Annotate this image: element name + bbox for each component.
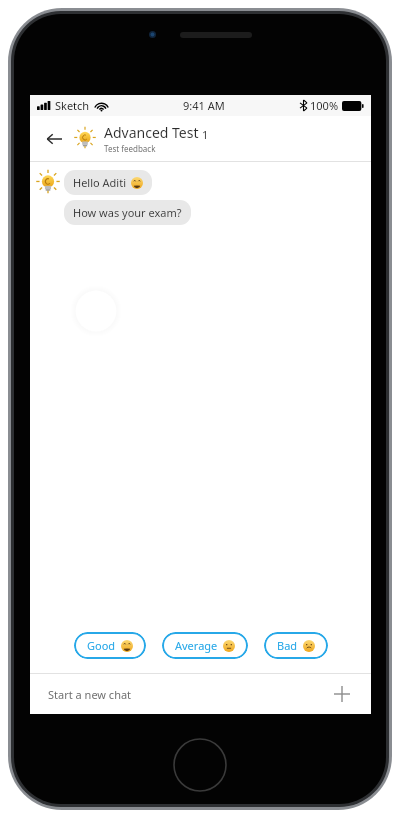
staticText: Bad [277, 638, 298, 653]
staticText: 100% [310, 98, 339, 113]
staticText: Sketch [55, 98, 90, 113]
staticText: Hello Aditi [73, 175, 126, 190]
button[interactable]: How was your exam? [64, 200, 191, 225]
button[interactable]: Add attachment [329, 681, 355, 707]
button[interactable]: Hello Aditi [64, 170, 152, 195]
staticText: Advanced Test [104, 123, 199, 142]
staticText: Good [87, 638, 116, 653]
button[interactable]: Good [74, 632, 146, 659]
staticText: How was your exam? [73, 205, 182, 220]
staticText: Average [175, 638, 218, 653]
staticText: 9:41 AM [183, 98, 225, 113]
staticText: 1 [202, 127, 209, 142]
button[interactable]: Bad [264, 632, 328, 659]
button[interactable]: Back [38, 123, 70, 155]
staticText: Start a new chat [48, 687, 132, 702]
staticText: Test feedback [104, 143, 156, 154]
button[interactable]: Average [162, 632, 248, 659]
button[interactable]: Start a new chat [30, 674, 371, 714]
